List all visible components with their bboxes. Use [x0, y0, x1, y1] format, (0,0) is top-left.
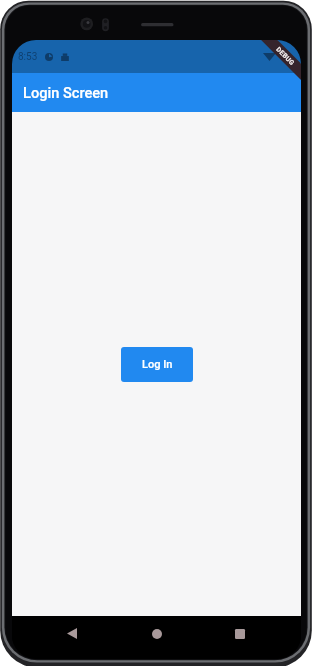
staticText: Login Screen [23, 84, 109, 101]
staticText: Log In [142, 358, 173, 371]
button[interactable]: Log In [121, 347, 193, 382]
button[interactable]: Recent apps [228, 622, 251, 645]
button[interactable]: Back [60, 622, 83, 645]
staticText: 8:53 [18, 51, 38, 63]
staticText: DEBUG [274, 45, 296, 67]
button[interactable]: Home [145, 622, 168, 645]
